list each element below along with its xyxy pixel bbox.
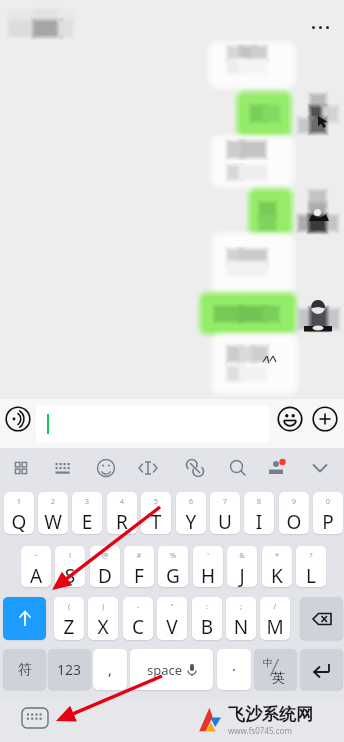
button[interactable]: Toolbar 7 [305,453,335,483]
staticText: www.fs0745.com [228,725,292,736]
button[interactable]: " [157,597,187,640]
button[interactable]: @ [90,546,120,587]
staticText: E [72,509,102,534]
staticText: A [21,563,51,587]
button[interactable]: ; [226,597,256,640]
button[interactable]: 3 [72,492,102,534]
button[interactable]: * [262,546,292,587]
button[interactable]: Toolbar 4 [180,453,210,483]
staticText: space [147,661,183,679]
staticText: L [296,563,326,587]
staticText: % [158,550,188,560]
button[interactable] [36,405,269,443]
button[interactable]: 9 [279,492,309,534]
staticText: & [227,550,257,560]
staticText: ( [54,601,84,611]
button[interactable]: - [123,597,153,640]
button[interactable]: More functions [312,406,338,432]
staticText: 6 [176,496,206,506]
button[interactable]: Toolbar 0 [6,453,36,483]
button[interactable]: Switch language [254,649,297,690]
staticText: 123 [57,660,82,679]
button[interactable]: 符 [3,649,46,690]
staticText: 8 [244,496,274,506]
staticText: : [192,601,222,611]
staticText: O [279,509,309,534]
staticText: W [38,509,68,534]
staticText: # [124,550,154,560]
staticText: Y [176,509,206,534]
button[interactable]: Shift [3,597,46,640]
staticText: M [260,614,290,640]
staticText: G [158,563,188,587]
staticText: 3 [72,496,102,506]
button[interactable]: space [130,649,213,690]
button[interactable]: More [306,13,334,41]
button[interactable]: % [158,546,188,587]
staticText: ? [296,550,326,560]
staticText: 0 [313,496,343,506]
button[interactable]: / [260,597,290,640]
button[interactable]: Voice input [5,406,31,432]
button[interactable]: 123 [48,649,91,690]
staticText: · [232,660,236,679]
button[interactable]: & [227,546,257,587]
staticText: - [123,601,153,611]
button[interactable]: ) [88,597,118,640]
button[interactable]: Hide keyboard [22,708,48,728]
staticText: T [141,509,171,534]
staticText: P [313,509,343,534]
staticText: N [226,614,256,640]
staticText: B [192,614,222,640]
button[interactable]: Toolbar 2 [91,453,121,483]
button[interactable]: Toolbar 1 [48,453,78,483]
button[interactable]: 1 [4,492,34,534]
button[interactable]: 4 [107,492,137,534]
staticText: Z [54,614,84,640]
button[interactable]: 2 [38,492,68,534]
button[interactable]: ! [55,546,85,587]
button[interactable]: ~ [21,546,51,587]
staticText: 7 [210,496,240,506]
staticText: 9 [279,496,309,506]
button[interactable]: 0 [313,492,343,534]
button[interactable]: Toolbar 3 [133,453,163,483]
staticText: C [123,614,153,640]
button[interactable]: Enter [300,649,343,690]
button[interactable]: : [192,597,222,640]
staticText: S [55,563,85,587]
staticText: ! [55,550,85,560]
button[interactable]: Toolbar 5 [223,453,253,483]
button[interactable]: Backspace [300,597,343,640]
button[interactable]: 5 [141,492,171,534]
button[interactable]: , [93,649,127,690]
staticText: 英 [272,669,285,685]
button[interactable]: ( [54,597,84,640]
staticText: Q [4,509,34,534]
staticText: X [88,614,118,640]
staticText: 中 [263,656,273,669]
staticText: R [107,509,137,534]
staticText: , [108,660,112,679]
button[interactable]: 6 [176,492,206,534]
staticText: * [262,550,292,560]
button[interactable]: ? [296,546,326,587]
staticText: D [90,563,120,587]
staticText: 2 [38,496,68,506]
button[interactable]: # [124,546,154,587]
staticText: K [262,563,292,587]
staticText: 飞沙系统网 [228,704,313,725]
staticText: ; [226,601,256,611]
staticText: " [157,601,187,611]
button[interactable]: 8 [244,492,274,534]
staticText: U [210,509,240,534]
staticText: J [227,563,257,587]
button[interactable]: · [217,649,251,690]
button[interactable]: Toolbar 6 [262,453,292,483]
button[interactable]: Emoji [277,406,303,432]
staticText: ~ [21,550,51,560]
staticText: V [157,614,187,640]
button[interactable]: ' [193,546,223,587]
button[interactable]: 7 [210,492,240,534]
staticText: H [193,563,223,587]
